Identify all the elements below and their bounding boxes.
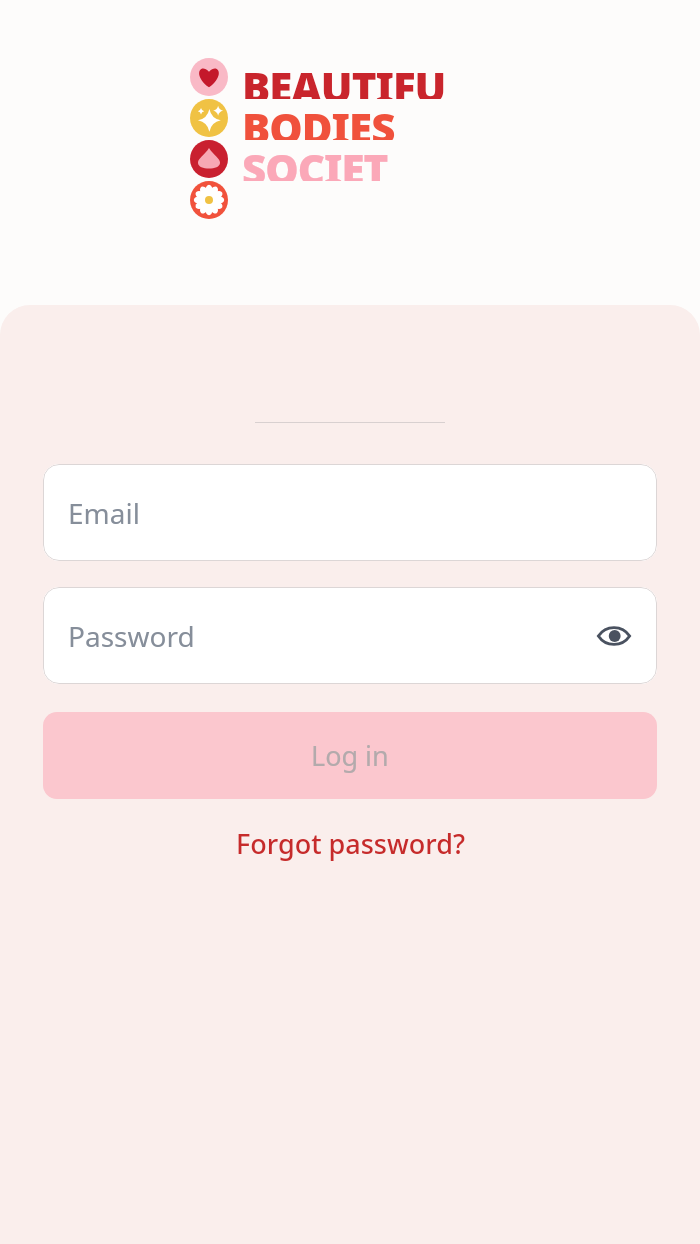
staticText: BODIES <box>242 99 415 140</box>
button[interactable]: Password <box>43 587 657 684</box>
staticText: Forgot password? <box>236 825 465 862</box>
staticText: SOCIETY <box>242 140 410 181</box>
button[interactable]: Forgot password? <box>218 817 483 870</box>
staticText: Log in <box>311 737 389 774</box>
staticText: Password <box>68 617 195 655</box>
staticText: BEAUTIFUL <box>242 58 467 99</box>
staticText: Email <box>68 494 140 532</box>
button[interactable]: Show password <box>589 611 639 661</box>
button[interactable]: Email <box>43 464 657 561</box>
button[interactable]: Log in <box>43 712 657 799</box>
